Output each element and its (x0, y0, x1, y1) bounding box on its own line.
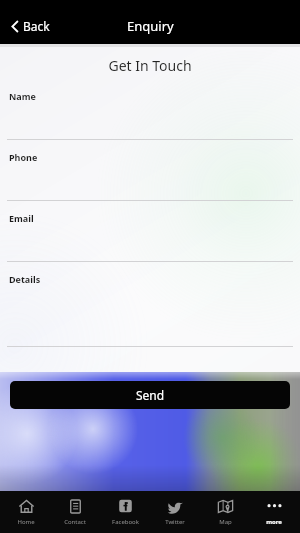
staticText: Send (136, 387, 165, 403)
button[interactable]: Phone (0, 151, 300, 212)
button[interactable]: more (250, 491, 298, 533)
button[interactable]: Map (201, 491, 249, 533)
staticText: Back (23, 18, 50, 34)
staticText: Contact (64, 518, 86, 526)
button[interactable]: Send (10, 381, 290, 409)
staticText: Facebook (112, 518, 139, 526)
button[interactable]: Twitter (151, 491, 199, 533)
staticText: Details (9, 273, 41, 285)
button[interactable]: Email (0, 212, 300, 273)
staticText: Phone (9, 151, 38, 163)
button[interactable]: Name (0, 90, 300, 151)
staticText: more (266, 518, 282, 526)
staticText: Email (9, 212, 34, 224)
button[interactable]: Back (6, 14, 56, 38)
button[interactable]: Home (2, 491, 50, 533)
staticText: Map (219, 518, 232, 526)
button[interactable]: Details (0, 273, 300, 358)
staticText: Get In Touch (0, 56, 300, 75)
staticText: Name (9, 90, 36, 102)
staticText: Twitter (165, 518, 185, 526)
staticText: Home (17, 518, 35, 526)
button[interactable]: Facebook (101, 491, 149, 533)
staticText: Enquiry (127, 17, 174, 35)
button[interactable]: Contact (51, 491, 99, 533)
